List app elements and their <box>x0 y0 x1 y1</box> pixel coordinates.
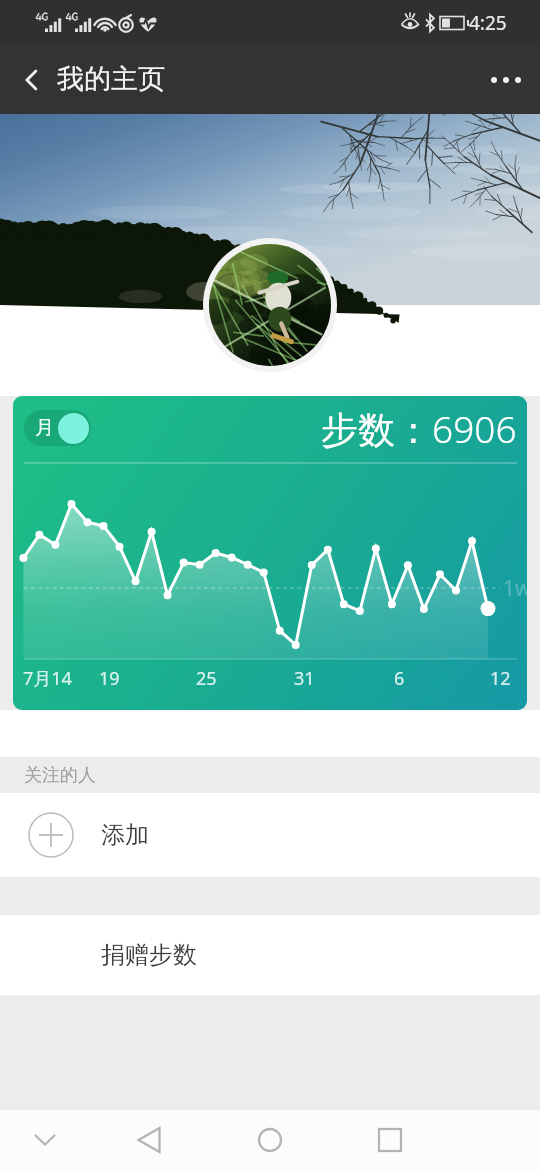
button[interactable]: Recents <box>366 1116 414 1164</box>
button[interactable]: Hide keyboard <box>21 1116 69 1164</box>
staticText: 12 <box>490 666 511 691</box>
staticText: 添加 <box>101 820 149 850</box>
button[interactable]: 添加 <box>0 793 540 877</box>
staticText: 捐赠步数 <box>101 940 197 970</box>
staticText: 25 <box>196 666 217 691</box>
button[interactable]: More options <box>480 54 532 106</box>
button[interactable]: 月 <box>13 396 527 710</box>
staticText: 7月14 <box>23 666 72 691</box>
button[interactable]: Back <box>125 1116 173 1164</box>
button[interactable]: Home <box>246 1116 294 1164</box>
button[interactable]: 捐赠步数 <box>0 915 540 995</box>
staticText: 月 <box>35 416 54 440</box>
staticText: 19 <box>99 666 120 691</box>
staticText: 我的主页 <box>57 62 165 96</box>
staticText: 关注的人 <box>24 764 96 787</box>
staticText: 31 <box>294 666 315 691</box>
button[interactable]: Back <box>6 54 58 106</box>
staticText: 步数：6906 <box>321 403 517 454</box>
button[interactable]: 月 <box>24 410 91 446</box>
staticText: 6 <box>394 666 405 691</box>
staticText: 1w <box>503 574 527 603</box>
button[interactable]: Profile photo <box>203 238 337 372</box>
staticText: 4:25 <box>469 10 507 36</box>
